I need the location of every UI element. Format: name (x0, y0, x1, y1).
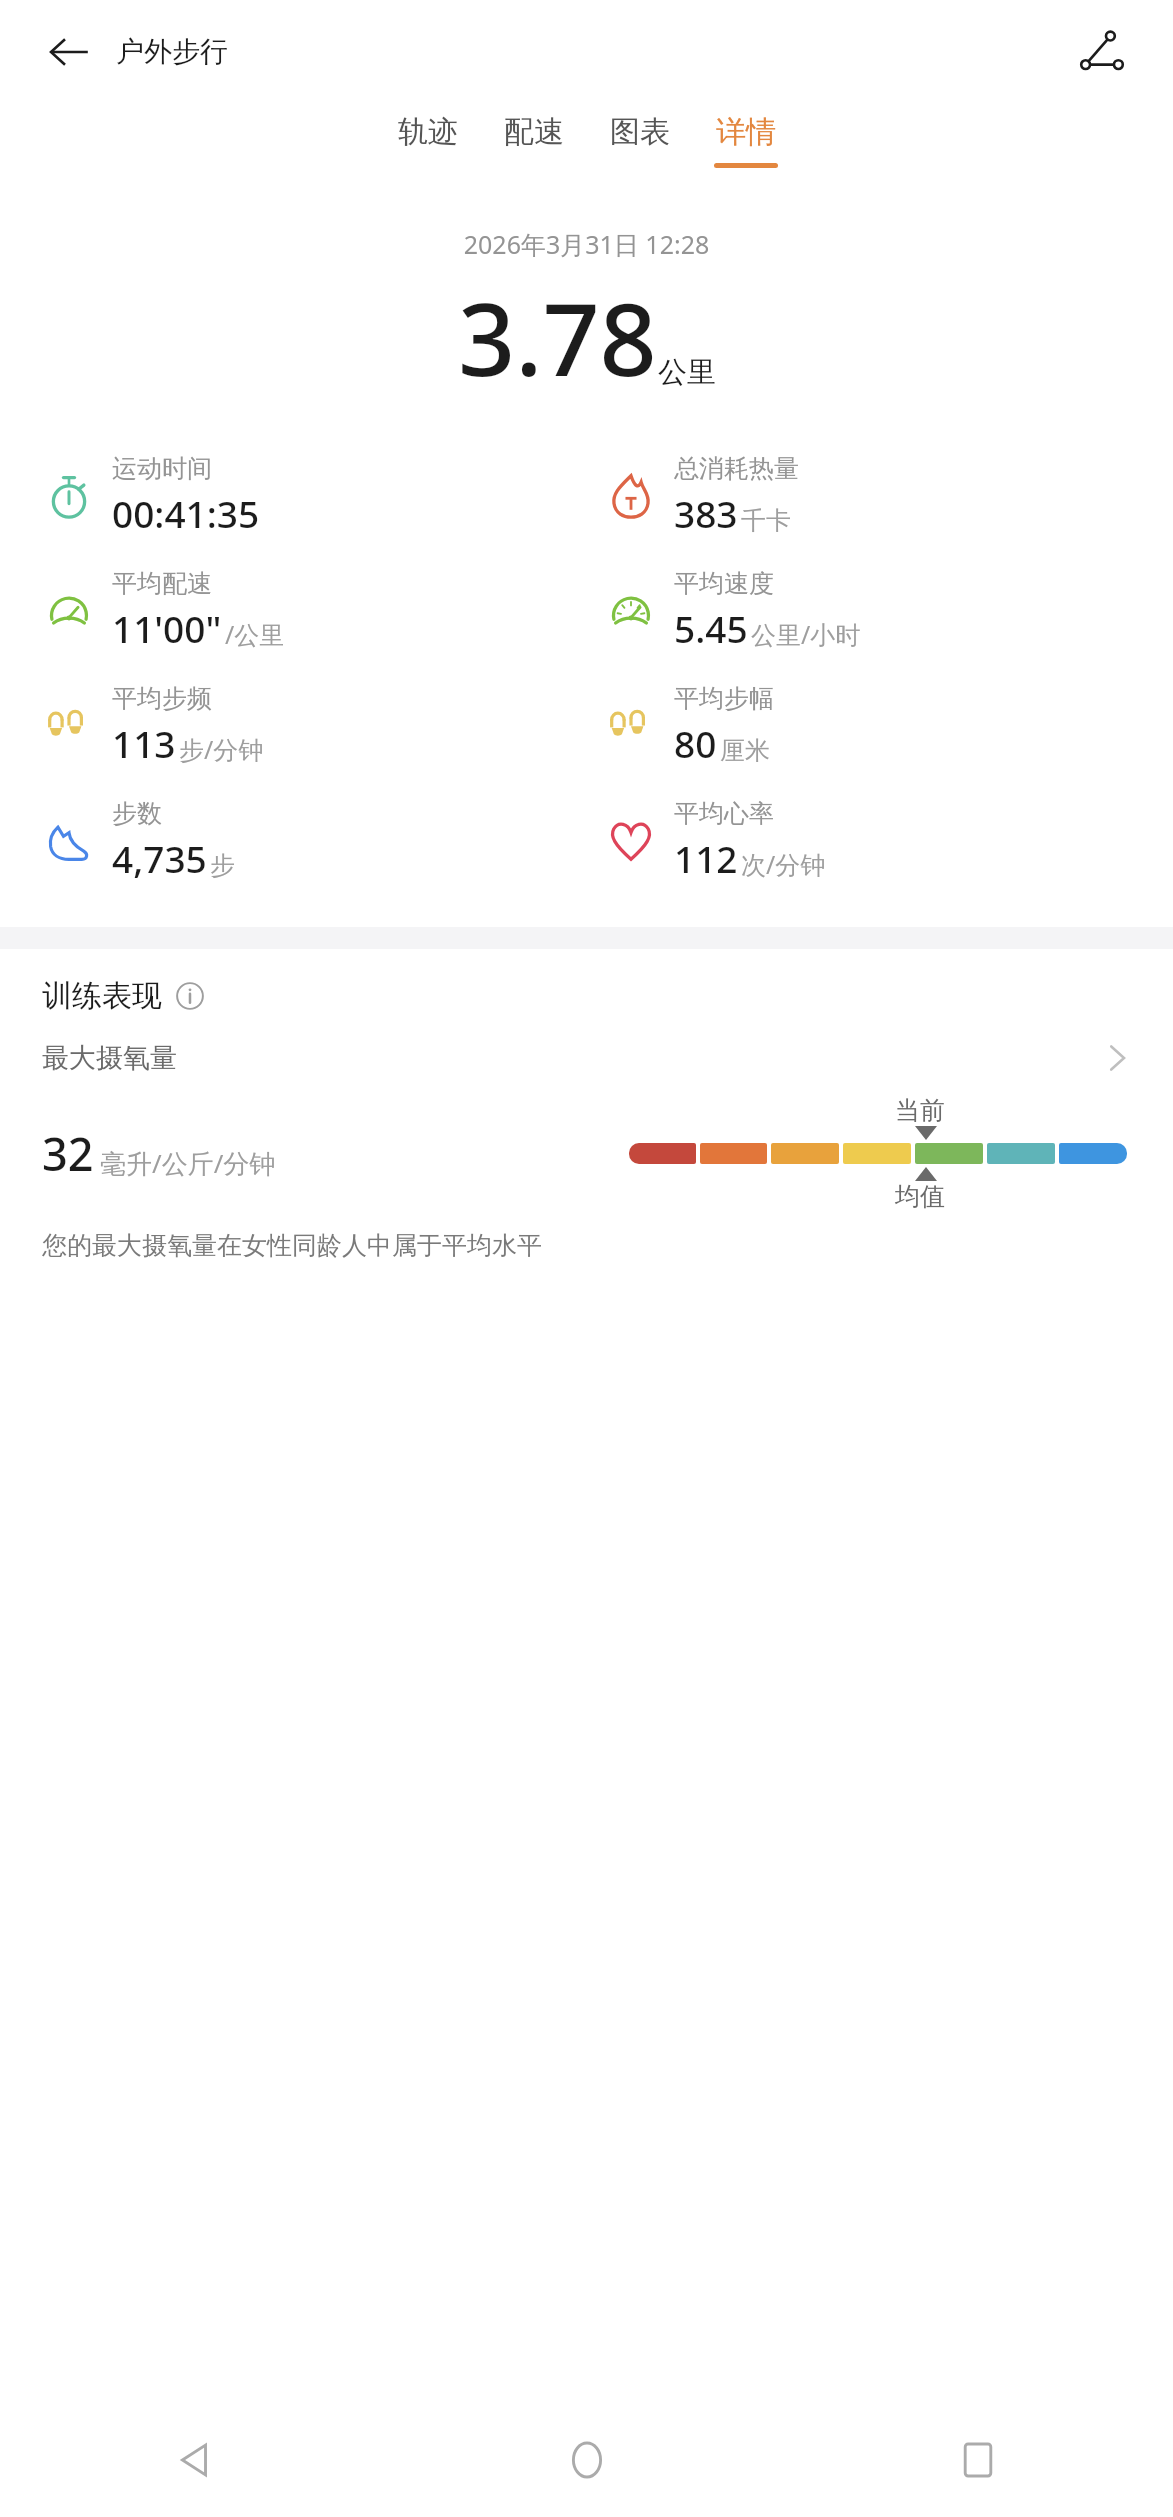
button[interactable]: 轨迹 (396, 103, 460, 168)
staticText: 公里 (658, 354, 716, 391)
staticText: 383 (674, 488, 738, 538)
staticText: 毫升/公斤/分钟 (100, 1145, 276, 1181)
button[interactable]: 平均步频 (40, 683, 264, 768)
button[interactable]: 最大摄氧量 (0, 1041, 1173, 1261)
staticText: 平均心率 (674, 798, 774, 829)
button[interactable]: Back (0, 2402, 391, 2517)
staticText: 80 (674, 718, 717, 768)
staticText: 次/分钟 (741, 847, 826, 881)
staticText: 3.78 (458, 269, 657, 405)
staticText: 总消耗热量 (674, 453, 799, 484)
staticText: 32 (42, 1123, 94, 1184)
button[interactable]: 平均步幅 (602, 683, 774, 768)
staticText: 户外步行 (116, 34, 228, 69)
button[interactable]: 配速 (502, 103, 566, 168)
staticText: 4,735 (112, 833, 207, 883)
staticText: 平均步幅 (674, 683, 774, 714)
staticText: 平均步频 (112, 683, 212, 714)
staticText: 步/分钟 (179, 732, 264, 766)
button[interactable]: Share (1071, 21, 1133, 83)
staticText: 平均速度 (674, 568, 774, 599)
staticText: 5.45 (674, 603, 748, 653)
staticText: 运动时间 (112, 453, 212, 484)
staticText: 最大摄氧量 (42, 1041, 177, 1075)
button[interactable]: 平均心率 (602, 798, 826, 883)
staticText: 113 (112, 718, 176, 768)
staticText: 详情 (716, 113, 776, 151)
button[interactable]: 详情 (714, 103, 778, 168)
button[interactable]: 总消耗热量 (602, 453, 799, 538)
staticText: 配速 (504, 113, 564, 151)
staticText: 步数 (112, 798, 162, 829)
button[interactable]: 平均配速 (40, 568, 285, 653)
staticText: /公里 (225, 617, 285, 651)
staticText: 步 (210, 850, 235, 881)
button[interactable]: Info (172, 978, 208, 1014)
staticText: 轨迹 (398, 113, 458, 151)
staticText: 千卡 (741, 505, 791, 536)
button[interactable]: 平均速度 (602, 568, 861, 653)
staticText: 当前 (895, 1095, 945, 1126)
button[interactable]: Home (391, 2402, 782, 2517)
staticText: 厘米 (720, 735, 770, 766)
staticText: 11'00" (112, 603, 222, 653)
staticText: 平均配速 (112, 568, 212, 599)
staticText: 2026年3月31日 12:28 (0, 227, 1173, 261)
button[interactable]: Back (38, 21, 100, 83)
staticText: 112 (674, 833, 738, 883)
staticText: 您的最大摄氧量在女性同龄人中属于平均水平 (42, 1230, 542, 1261)
button[interactable]: 图表 (608, 103, 672, 168)
button[interactable]: Recents (782, 2402, 1173, 2517)
staticText: 训练表现 (42, 977, 162, 1015)
button[interactable]: 步数 (40, 798, 235, 883)
button[interactable]: 运动时间 (40, 453, 260, 538)
staticText: 均值 (895, 1181, 945, 1212)
staticText: 公里/小时 (751, 617, 861, 651)
staticText: 00:41:35 (112, 488, 260, 538)
staticText: 图表 (610, 113, 670, 151)
